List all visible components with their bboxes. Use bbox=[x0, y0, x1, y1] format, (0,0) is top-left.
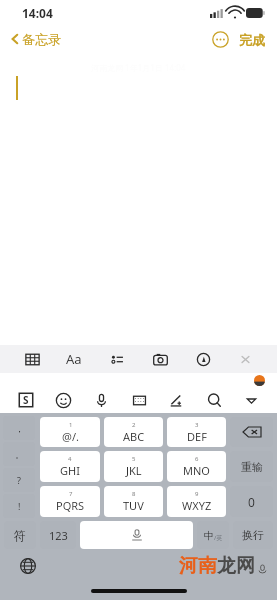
button[interactable]: 8 bbox=[104, 486, 163, 517]
button[interactable]: 123 bbox=[40, 521, 76, 549]
staticText: 8 bbox=[132, 490, 136, 498]
button[interactable]: 符 bbox=[4, 521, 36, 549]
staticText: 符 bbox=[14, 528, 26, 543]
button[interactable]: Switch language bbox=[20, 558, 36, 574]
staticText: JKL bbox=[126, 463, 142, 478]
button[interactable]: 中 bbox=[197, 521, 229, 549]
button[interactable]: Checklist bbox=[106, 348, 128, 370]
staticText: TUV bbox=[123, 498, 144, 513]
staticText: 3 bbox=[195, 421, 199, 429]
staticText: 9 bbox=[195, 490, 199, 498]
button[interactable]: 9 bbox=[167, 486, 226, 517]
staticText: MNO bbox=[183, 463, 210, 478]
button[interactable]: Sogou bbox=[16, 390, 36, 410]
button[interactable]: Close bbox=[234, 348, 256, 370]
staticText: 6 bbox=[195, 455, 199, 463]
staticText: 。 bbox=[15, 449, 24, 460]
button[interactable]: Keyboard bbox=[128, 389, 150, 411]
staticText: 123 bbox=[49, 528, 68, 543]
staticText: 重输 bbox=[241, 460, 263, 474]
button[interactable]: Search bbox=[203, 389, 225, 411]
button[interactable]: 6 bbox=[167, 451, 226, 482]
staticText: S bbox=[23, 393, 29, 407]
staticText: 完成 bbox=[239, 32, 265, 48]
staticText: /英 bbox=[214, 534, 223, 542]
button[interactable]: Voice input bbox=[90, 389, 112, 411]
button[interactable]: 备忘录 bbox=[8, 31, 61, 47]
button[interactable]: Emoji bbox=[52, 389, 74, 411]
staticText: ! bbox=[18, 500, 21, 512]
staticText: 2 bbox=[132, 421, 136, 429]
staticText: 5 bbox=[132, 455, 136, 463]
staticText: 7 bbox=[69, 490, 73, 498]
staticText: 中 bbox=[204, 529, 214, 542]
staticText: ABC bbox=[123, 429, 145, 444]
staticText: WXYZ bbox=[182, 498, 212, 513]
staticText: 4 bbox=[68, 455, 72, 463]
button[interactable]: 7 bbox=[40, 486, 100, 517]
button[interactable]: Aa bbox=[63, 348, 85, 370]
staticText: DEF bbox=[187, 429, 207, 444]
staticText: 备忘录 bbox=[22, 31, 61, 47]
button[interactable]: Camera bbox=[149, 348, 171, 370]
staticText: GHI bbox=[60, 463, 80, 478]
staticText: Aa bbox=[66, 350, 82, 368]
staticText: 换行 bbox=[242, 528, 264, 542]
staticText: 0 bbox=[248, 494, 255, 510]
button[interactable]: Handwriting bbox=[165, 389, 187, 411]
staticText: @/. bbox=[62, 429, 79, 444]
button[interactable]: 2 bbox=[104, 417, 163, 447]
staticText: 1 bbox=[69, 421, 73, 429]
button[interactable]: 5 bbox=[104, 451, 163, 482]
button[interactable]: More options bbox=[212, 31, 229, 48]
staticText: ? bbox=[17, 474, 21, 486]
staticText: 河南 bbox=[179, 554, 217, 578]
button[interactable]: Space bbox=[80, 521, 193, 549]
staticText: 龙网 bbox=[217, 554, 255, 578]
button[interactable]: ! bbox=[3, 494, 35, 518]
button[interactable]: 。 bbox=[3, 442, 35, 466]
button[interactable]: ， bbox=[3, 416, 35, 440]
button[interactable]: 4 bbox=[40, 451, 100, 482]
staticText: ， bbox=[15, 423, 24, 434]
button[interactable]: 3 bbox=[167, 417, 226, 447]
button[interactable]: 1 bbox=[40, 417, 100, 447]
button[interactable]: Collapse keyboard bbox=[241, 390, 261, 410]
button[interactable]: 换行 bbox=[233, 521, 273, 549]
staticText: PQRS bbox=[56, 498, 85, 513]
button[interactable]: Table bbox=[21, 348, 43, 370]
button[interactable]: 完成 bbox=[239, 32, 265, 48]
button[interactable]: Delete bbox=[230, 417, 273, 447]
staticText: 14:04 bbox=[22, 5, 53, 21]
button[interactable]: 重输 bbox=[230, 451, 273, 482]
button[interactable]: Avatar bbox=[254, 375, 265, 386]
button[interactable]: Markup bbox=[192, 348, 214, 370]
button[interactable]: 0 bbox=[230, 486, 273, 517]
button[interactable]: ? bbox=[3, 468, 35, 492]
